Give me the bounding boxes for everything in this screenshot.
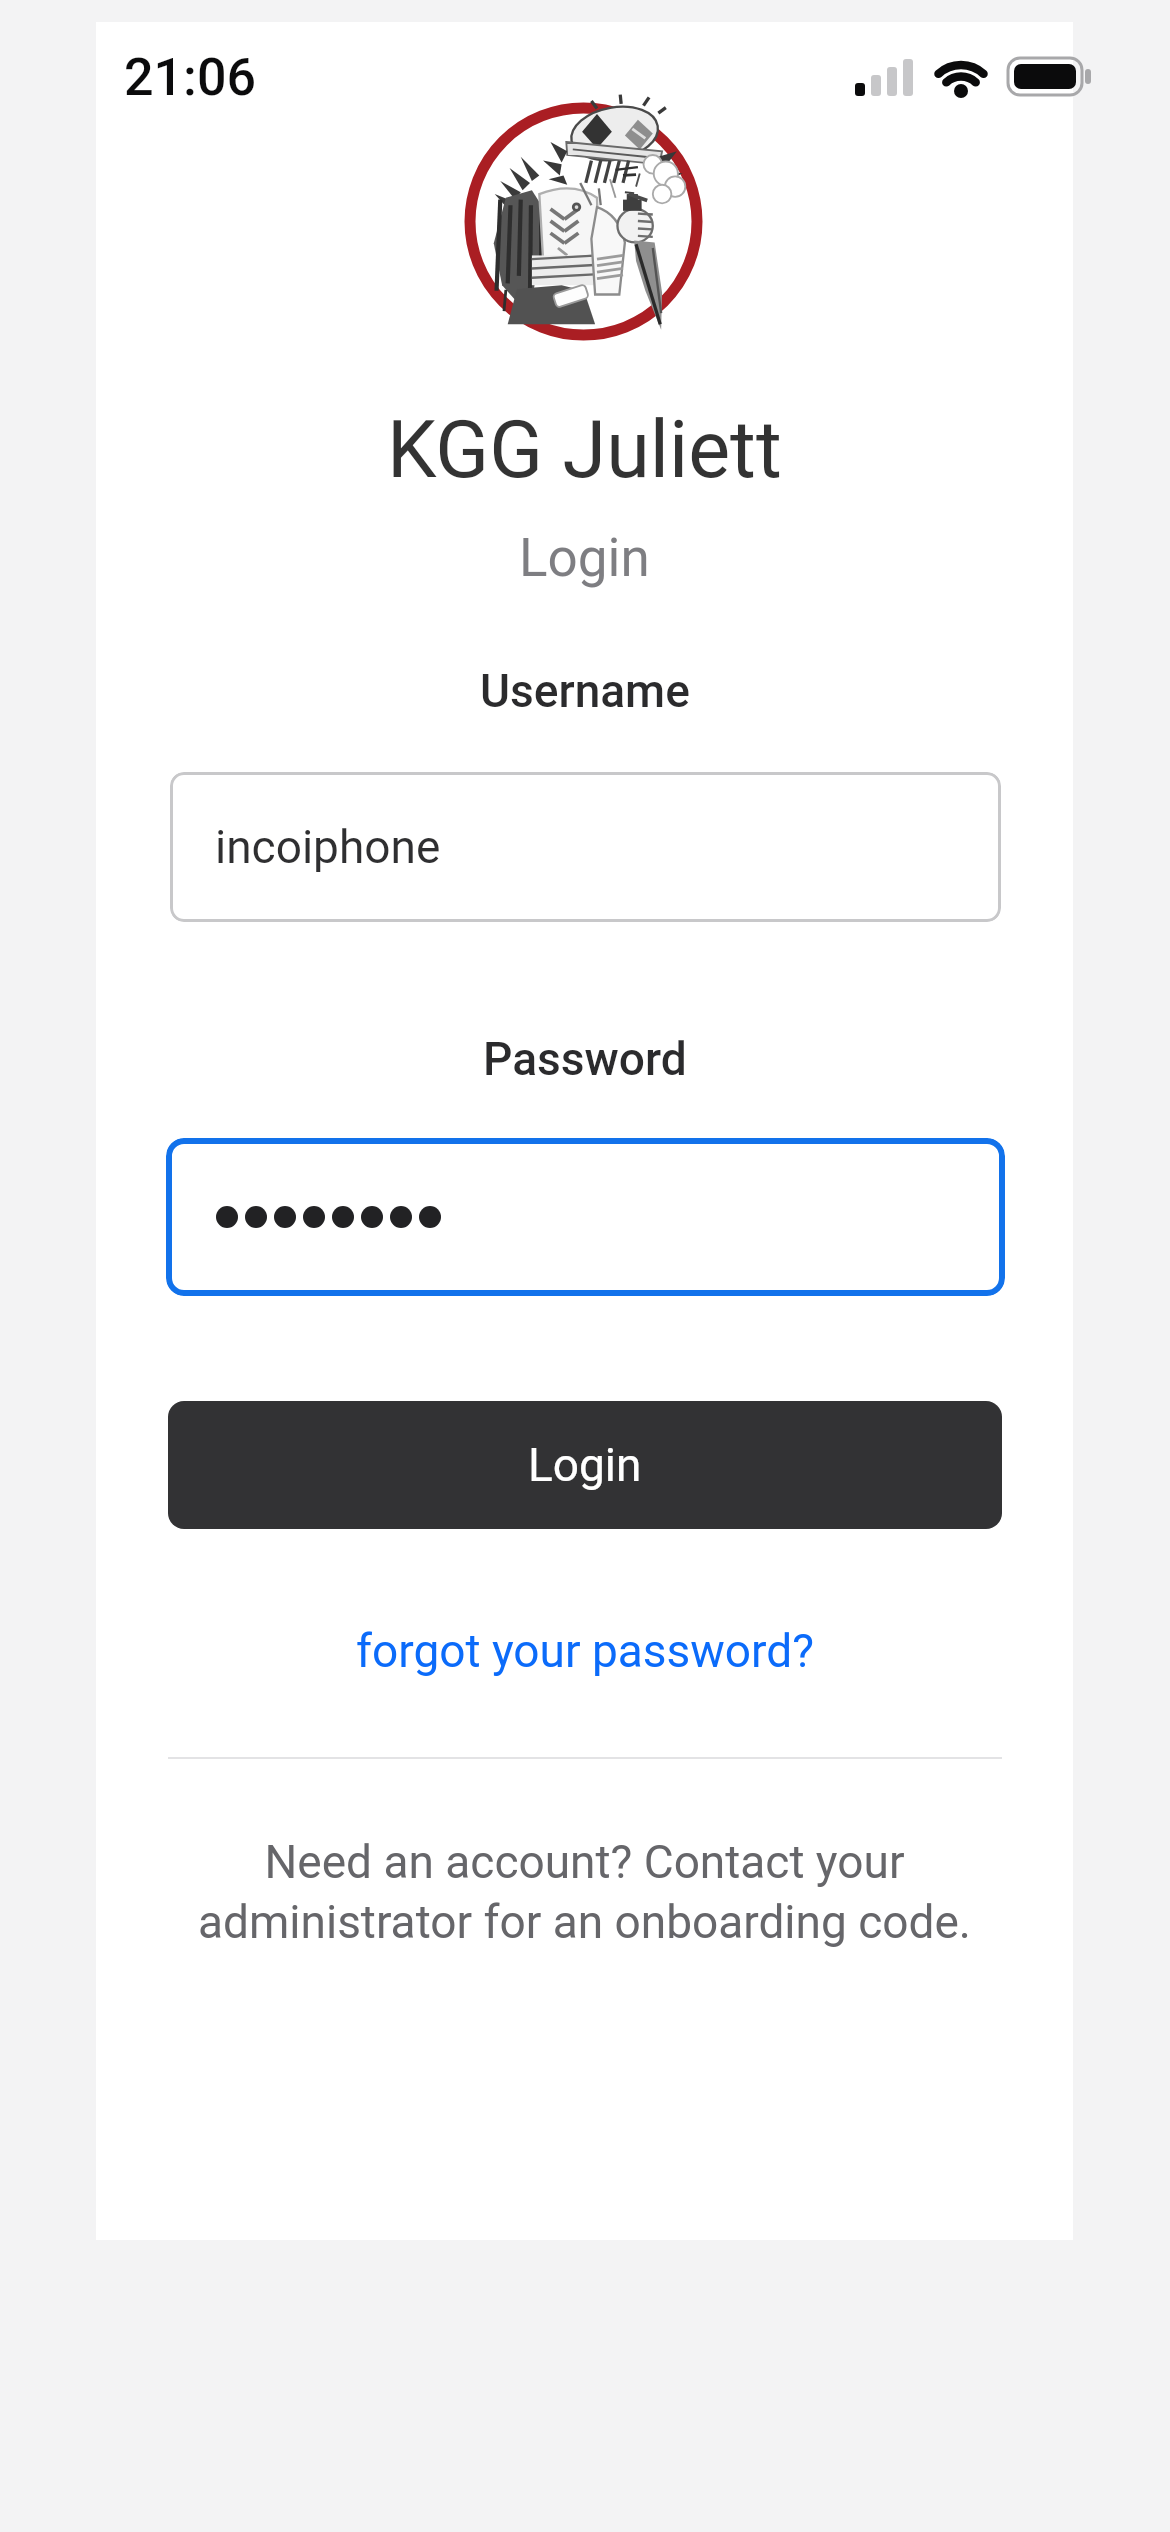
staticText: Password [483,1032,687,1086]
staticText: Login [528,1438,642,1492]
button[interactable] [166,1138,1005,1296]
staticText: KGG Juliett [387,404,782,497]
staticText: incoiphone [215,820,441,874]
staticText: forgot your password? [356,1624,814,1678]
button[interactable]: forgot your password? [356,1624,814,1678]
button[interactable]: Login [168,1401,1002,1529]
staticText: Username [480,664,690,718]
staticText: 21:06 [124,47,257,108]
staticText: Need an account? Contact your administra… [198,1835,971,1950]
staticText: Login [519,527,650,589]
button[interactable]: incoiphone [170,772,1001,922]
